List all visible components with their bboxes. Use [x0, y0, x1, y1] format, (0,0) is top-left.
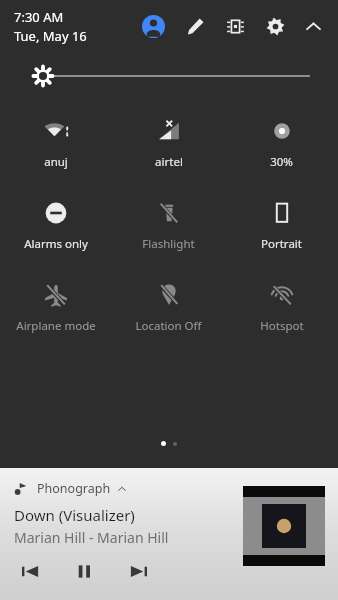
staticText: Tue, May 16 [14, 27, 87, 45]
button[interactable]: Alarms only [0, 196, 112, 256]
button[interactable]: Settings [260, 11, 290, 41]
button[interactable]: Hotspot [225, 278, 338, 338]
staticText: Flashlight [142, 236, 195, 252]
button[interactable]: Location Off [112, 278, 225, 338]
staticText: Alarms only [24, 236, 88, 252]
staticText: Airplane mode [16, 318, 96, 334]
button[interactable]: Pause [68, 555, 100, 587]
button[interactable]: Previous [14, 555, 46, 587]
staticText: Location Off [135, 318, 202, 334]
button[interactable]: 30% [225, 114, 338, 174]
staticText: Phonograph [37, 480, 111, 497]
staticText: airtel [155, 154, 183, 170]
staticText: 7:30 AM [14, 8, 64, 26]
button[interactable]: Flashlight [112, 196, 225, 256]
button[interactable]: airtel [112, 114, 225, 174]
staticText: Hotspot [260, 318, 304, 334]
button[interactable]: Phonograph [0, 468, 338, 600]
staticText: Marian Hill - Marian Hill [14, 528, 169, 547]
button[interactable]: User account [136, 9, 170, 43]
staticText: Down (Visualizer) [14, 505, 135, 525]
staticText: anuj [44, 154, 68, 170]
button[interactable]: Edit [180, 11, 210, 41]
staticText: Portrait [261, 236, 302, 252]
button[interactable]: Memory [220, 11, 250, 41]
button[interactable]: Brightness [0, 52, 338, 100]
button[interactable]: Collapse [298, 11, 328, 41]
button[interactable]: anuj [0, 114, 112, 174]
button[interactable]: Next [122, 555, 154, 587]
button[interactable]: Airplane mode [0, 278, 112, 338]
staticText: 30% [270, 154, 293, 170]
button[interactable]: Portrait [225, 196, 338, 256]
